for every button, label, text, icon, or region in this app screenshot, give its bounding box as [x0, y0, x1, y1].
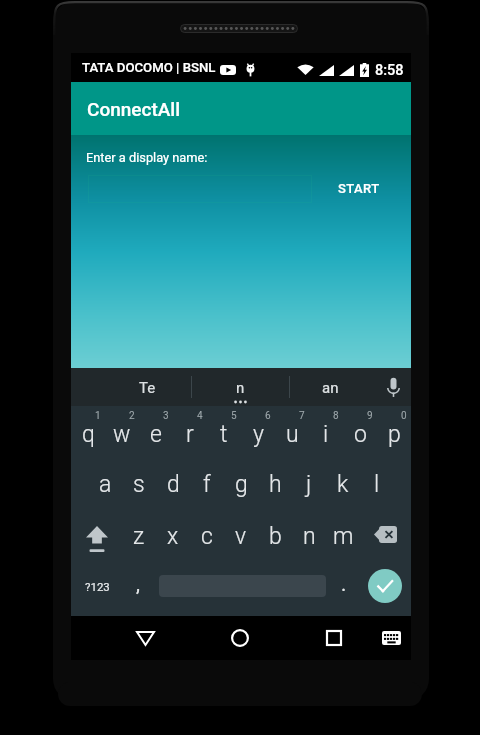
- button[interactable]: Recents: [310, 616, 358, 660]
- button[interactable]: b: [258, 510, 292, 562]
- button[interactable]: Enter: [359, 559, 411, 613]
- button[interactable]: [88, 175, 312, 203]
- staticText: z: [133, 523, 145, 550]
- button[interactable]: c: [190, 510, 224, 562]
- staticText: .: [341, 572, 347, 595]
- staticText: 4: [197, 410, 203, 422]
- button[interactable]: x: [156, 510, 190, 562]
- staticText: h: [269, 471, 282, 498]
- button[interactable]: n: [292, 510, 326, 562]
- staticText: 5: [231, 410, 237, 422]
- staticText: u: [286, 421, 299, 448]
- button[interactable]: ConnectAll: [71, 82, 411, 135]
- button[interactable]: j: [292, 458, 326, 510]
- button[interactable]: z: [122, 510, 156, 562]
- button[interactable]: n: [191, 368, 289, 406]
- staticText: r: [186, 421, 194, 448]
- staticText: k: [337, 471, 349, 498]
- button[interactable]: k: [326, 458, 360, 510]
- staticText: an: [322, 379, 339, 397]
- staticText: 8:58: [375, 62, 404, 79]
- button[interactable]: g: [224, 458, 258, 510]
- staticText: x: [167, 523, 179, 550]
- staticText: o: [354, 421, 367, 448]
- button[interactable]: m: [326, 510, 360, 562]
- button[interactable]: Te: [104, 368, 191, 406]
- staticText: m: [333, 523, 354, 550]
- staticText: n: [303, 523, 316, 550]
- staticText: g: [235, 471, 248, 498]
- button[interactable]: 9: [343, 406, 377, 458]
- staticText: d: [167, 471, 180, 498]
- staticText: 7: [299, 410, 305, 422]
- staticText: 9: [367, 410, 373, 422]
- button[interactable]: Backspace: [360, 510, 411, 562]
- staticText: ConnectAll: [87, 98, 181, 120]
- staticText: p: [388, 421, 401, 448]
- staticText: ?123: [85, 580, 110, 593]
- staticText: b: [269, 523, 282, 550]
- button[interactable]: s: [122, 458, 156, 510]
- button[interactable]: Shift: [71, 510, 122, 562]
- button[interactable]: 1: [71, 406, 105, 458]
- button[interactable]: 4: [173, 406, 207, 458]
- staticText: Te: [139, 379, 156, 397]
- button[interactable]: 8: [309, 406, 343, 458]
- button[interactable]: 6: [241, 406, 275, 458]
- button[interactable]: Switch keyboard: [367, 616, 415, 660]
- button[interactable]: an: [289, 368, 371, 406]
- button[interactable]: v: [224, 510, 258, 562]
- button[interactable]: Back: [121, 616, 169, 660]
- button[interactable]: 7: [275, 406, 309, 458]
- staticText: i: [323, 421, 329, 448]
- staticText: n: [236, 379, 245, 397]
- button[interactable]: l: [360, 458, 394, 510]
- button[interactable]: ,: [123, 556, 153, 610]
- button[interactable]: f: [190, 458, 224, 510]
- staticText: q: [82, 421, 95, 448]
- staticText: 0: [401, 410, 407, 422]
- staticText: c: [201, 523, 213, 550]
- staticText: ,: [136, 572, 140, 595]
- staticText: j: [306, 471, 312, 498]
- staticText: t: [220, 421, 228, 448]
- staticText: a: [99, 471, 112, 498]
- button[interactable]: d: [156, 458, 190, 510]
- button[interactable]: Home: [216, 616, 264, 660]
- button[interactable]: .: [329, 556, 359, 610]
- staticText: 3: [163, 410, 169, 422]
- staticText: 2: [129, 410, 135, 422]
- button[interactable]: 3: [139, 406, 173, 458]
- staticText: 1: [95, 410, 101, 422]
- staticText: e: [150, 421, 162, 448]
- button[interactable]: START: [323, 172, 395, 205]
- staticText: w: [113, 421, 131, 448]
- staticText: s: [133, 471, 145, 498]
- staticText: START: [338, 181, 380, 196]
- staticText: 8: [333, 410, 339, 422]
- staticText: y: [253, 421, 264, 448]
- button[interactable]: 2: [105, 406, 139, 458]
- staticText: v: [235, 523, 247, 550]
- staticText: TATA DOCOMO | BSNL: [82, 60, 216, 75]
- staticText: 6: [265, 410, 271, 422]
- button[interactable]: Space: [159, 559, 326, 613]
- button[interactable]: 5: [207, 406, 241, 458]
- staticText: Enter a display name:: [86, 150, 208, 165]
- button[interactable]: a: [88, 458, 122, 510]
- staticText: l: [374, 471, 380, 498]
- button[interactable]: ?123: [71, 559, 123, 613]
- staticText: f: [203, 471, 211, 498]
- button[interactable]: 0: [377, 406, 411, 458]
- button[interactable]: h: [258, 458, 292, 510]
- button[interactable]: Voice input: [375, 368, 411, 406]
